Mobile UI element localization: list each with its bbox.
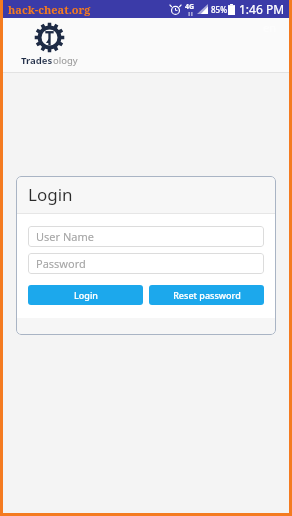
button[interactable]: Reset password (149, 285, 264, 305)
button[interactable]: User Name (28, 226, 264, 247)
staticText: hack-cheat.org (8, 2, 91, 17)
staticText: 1:46 PM (239, 1, 285, 17)
staticText: Login (74, 289, 98, 301)
staticText: Password (36, 256, 86, 271)
button[interactable]: Password (28, 253, 264, 274)
staticText: ology (53, 54, 78, 67)
staticText: 4G (185, 2, 195, 12)
staticText: Reset password (173, 289, 241, 301)
staticText: User Name (36, 229, 94, 244)
staticText: Trades (21, 54, 53, 67)
staticText: Login (28, 183, 73, 206)
staticText: 85% (211, 4, 227, 15)
button[interactable]: Login (28, 285, 143, 305)
